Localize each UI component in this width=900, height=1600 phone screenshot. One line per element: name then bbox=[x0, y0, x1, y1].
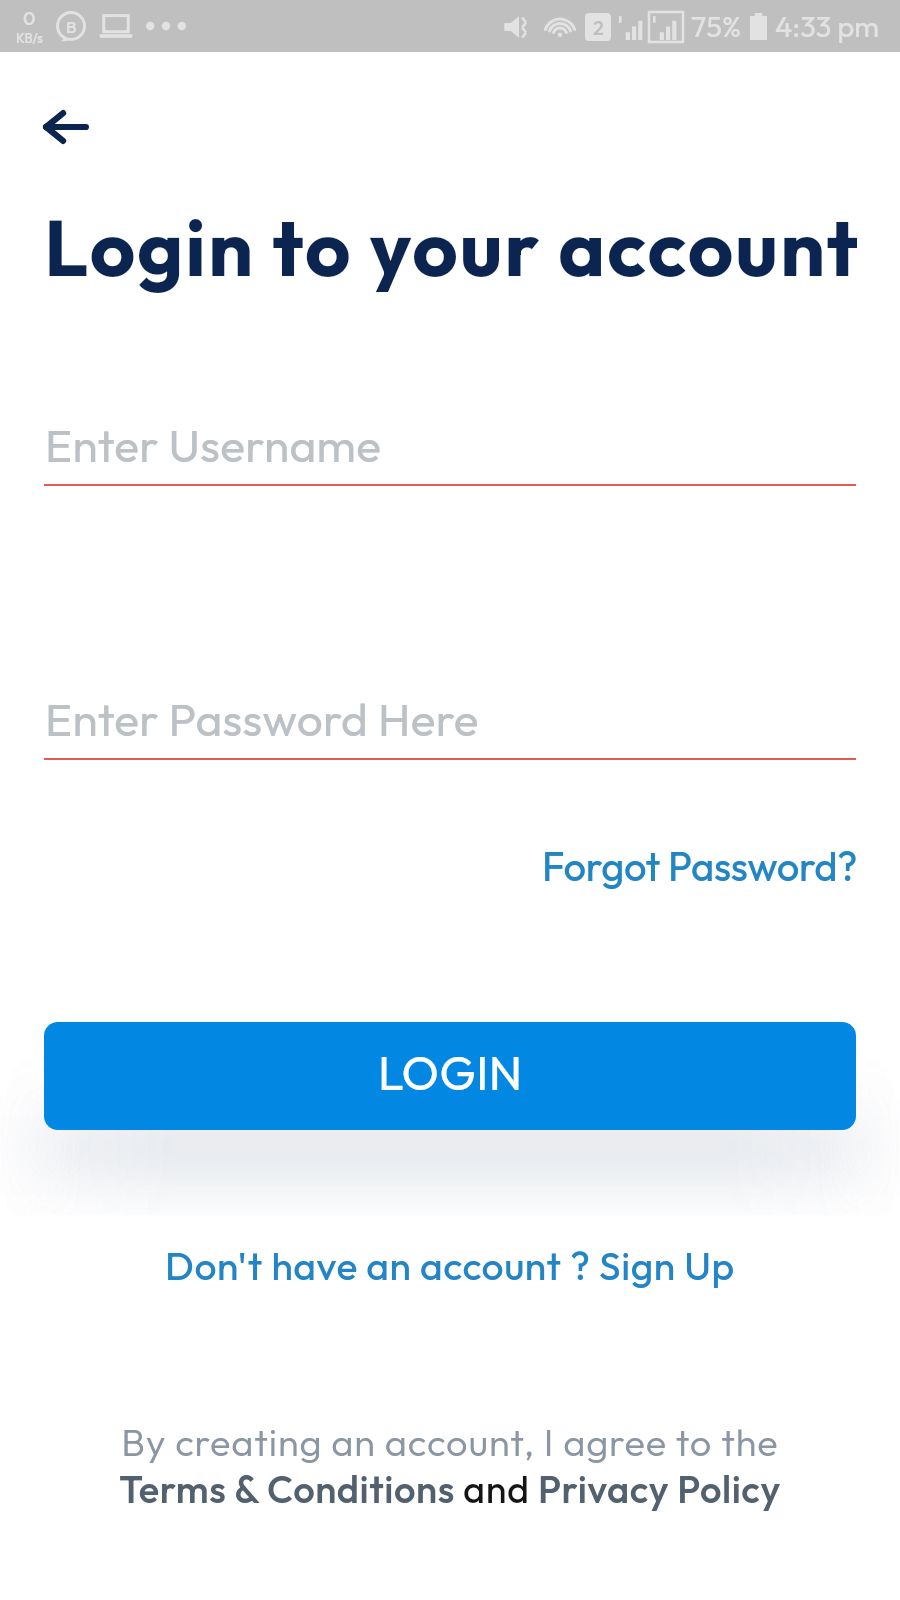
staticText: KB/s bbox=[16, 30, 43, 46]
button[interactable]: LOGIN bbox=[44, 1022, 856, 1130]
staticText: LOGIN bbox=[378, 1043, 523, 1102]
staticText: Enter Password Here bbox=[45, 690, 479, 748]
button[interactable]: Forgot Password? bbox=[542, 841, 858, 891]
staticText: 4:33 pm bbox=[775, 8, 880, 45]
staticText: Enter Username bbox=[45, 416, 382, 474]
staticText: B bbox=[66, 16, 77, 37]
staticText: 75% bbox=[691, 8, 742, 45]
staticText: 0 bbox=[23, 6, 36, 30]
button[interactable]: By creating an account, I agree to the T… bbox=[0, 1418, 900, 1513]
staticText: 2 bbox=[593, 15, 604, 40]
button[interactable]: Back bbox=[26, 87, 106, 167]
button[interactable]: Don't have an account ? Sign Up bbox=[165, 1241, 735, 1290]
staticText: Login to your account bbox=[44, 197, 861, 297]
